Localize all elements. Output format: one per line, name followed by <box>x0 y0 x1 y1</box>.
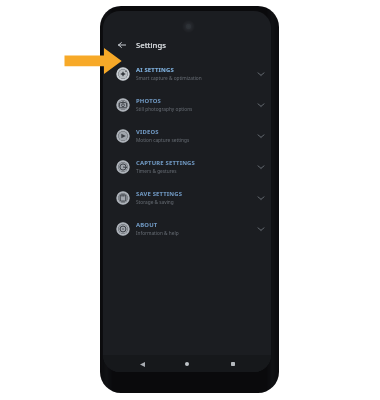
button[interactable]: SAVE SETTINGS <box>103 182 271 213</box>
staticText: PHOTOS <box>136 97 161 105</box>
staticText: VIDEOS <box>136 128 159 136</box>
staticText: ABOUT <box>136 221 158 229</box>
button[interactable]: CAPTURE SETTINGS <box>103 151 271 182</box>
staticText: CAPTURE SETTINGS <box>136 159 195 167</box>
staticText: Information & help <box>136 230 179 236</box>
button[interactable]: ABOUT <box>103 213 271 244</box>
staticText: Storage & saving <box>136 199 174 205</box>
staticText: Motion capture settings <box>136 137 190 143</box>
button[interactable]: PHOTOS <box>103 89 271 120</box>
staticText: Timers & gestures <box>136 168 177 174</box>
staticText: Smart capture & optimization <box>136 75 202 81</box>
button[interactable]: Home <box>180 357 194 371</box>
staticText: AI SETTINGS <box>136 66 174 74</box>
staticText: Still photography options <box>136 106 193 112</box>
button[interactable]: Back <box>112 34 132 56</box>
staticText: Settings <box>136 40 166 50</box>
button[interactable]: Recent apps <box>226 357 240 371</box>
button[interactable]: AI SETTINGS <box>103 58 271 89</box>
staticText: SAVE SETTINGS <box>136 190 183 198</box>
button[interactable]: VIDEOS <box>103 120 271 151</box>
button[interactable]: Back <box>135 357 149 371</box>
